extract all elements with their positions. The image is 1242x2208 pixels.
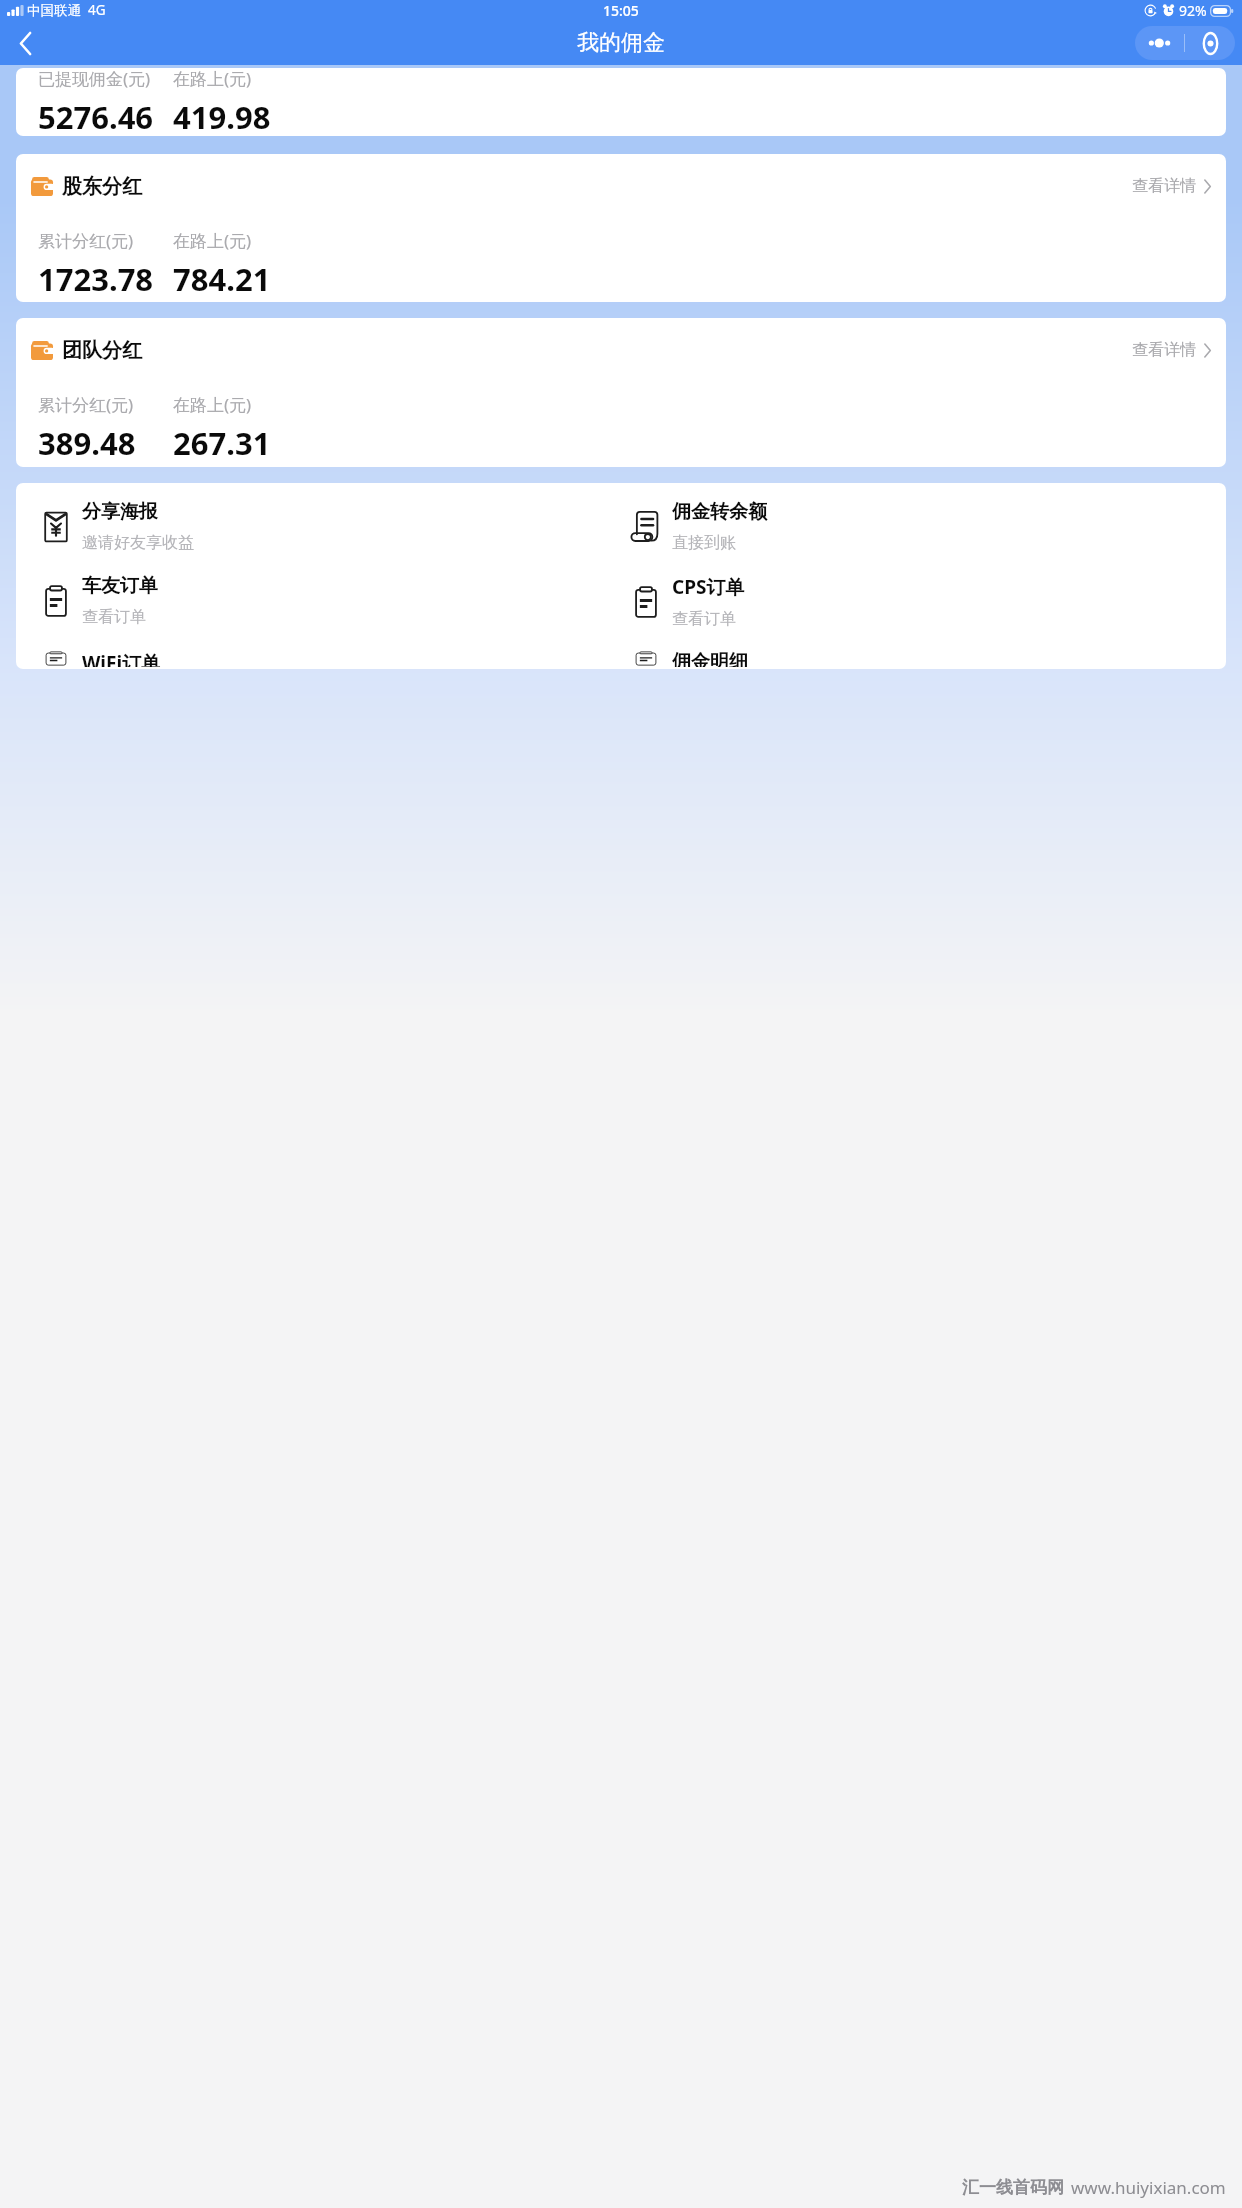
staticText: 784.21 [173,258,271,300]
button[interactable]: 查看详情 [1130,170,1213,202]
staticText: 4G [88,1,106,19]
button[interactable]: CPS订单 [623,572,1214,631]
staticText: 汇一线首码网 [962,2177,1064,2198]
staticText: WiFi订单 [82,650,161,667]
staticText: 查看详情 [1132,340,1196,360]
staticText: 在路上(元) [173,229,252,252]
button[interactable]: WiFi订单 [33,648,623,669]
button[interactable]: More [1135,26,1184,60]
staticText: 查看订单 [672,609,736,629]
staticText: 5276.46 [38,96,154,135]
staticText: CPS订单 [672,574,745,600]
button[interactable]: 佣金转余额 [623,498,1214,555]
staticText: 累计分红(元) [38,229,134,252]
staticText: 在路上(元) [173,393,252,416]
staticText: 267.31 [173,422,271,464]
button[interactable]: Close mini program [1185,26,1235,60]
button[interactable]: 车友订单 [33,572,623,629]
staticText: 股东分红 [62,174,142,199]
staticText: 419.98 [173,96,271,135]
button[interactable]: Back [5,23,45,63]
staticText: 佣金明细 [672,650,748,667]
staticText: 389.48 [38,422,136,464]
staticText: 1723.78 [38,258,154,300]
staticText: 直接到账 [672,533,736,553]
staticText: 15:05 [603,1,639,20]
staticText: 邀请好友享收益 [82,533,194,553]
staticText: 已提现佣金(元) [38,68,151,90]
staticText: 我的佣金 [577,29,665,57]
staticText: 分享海报 [82,500,158,524]
staticText: 佣金转余额 [672,500,767,524]
staticText: 累计分红(元) [38,393,134,416]
staticText: 中国联通 [27,2,81,19]
button[interactable]: 分享海报 [33,498,623,555]
button[interactable]: 查看详情 [1130,334,1213,366]
staticText: 92% [1179,1,1207,20]
staticText: www.huiyixian.com [1071,2176,1226,2199]
staticText: 在路上(元) [173,68,252,90]
staticText: 车友订单 [82,574,158,598]
button[interactable]: 佣金明细 [623,648,1214,669]
staticText: 团队分红 [62,338,142,363]
staticText: 查看订单 [82,607,146,627]
staticText: 查看详情 [1132,176,1196,196]
